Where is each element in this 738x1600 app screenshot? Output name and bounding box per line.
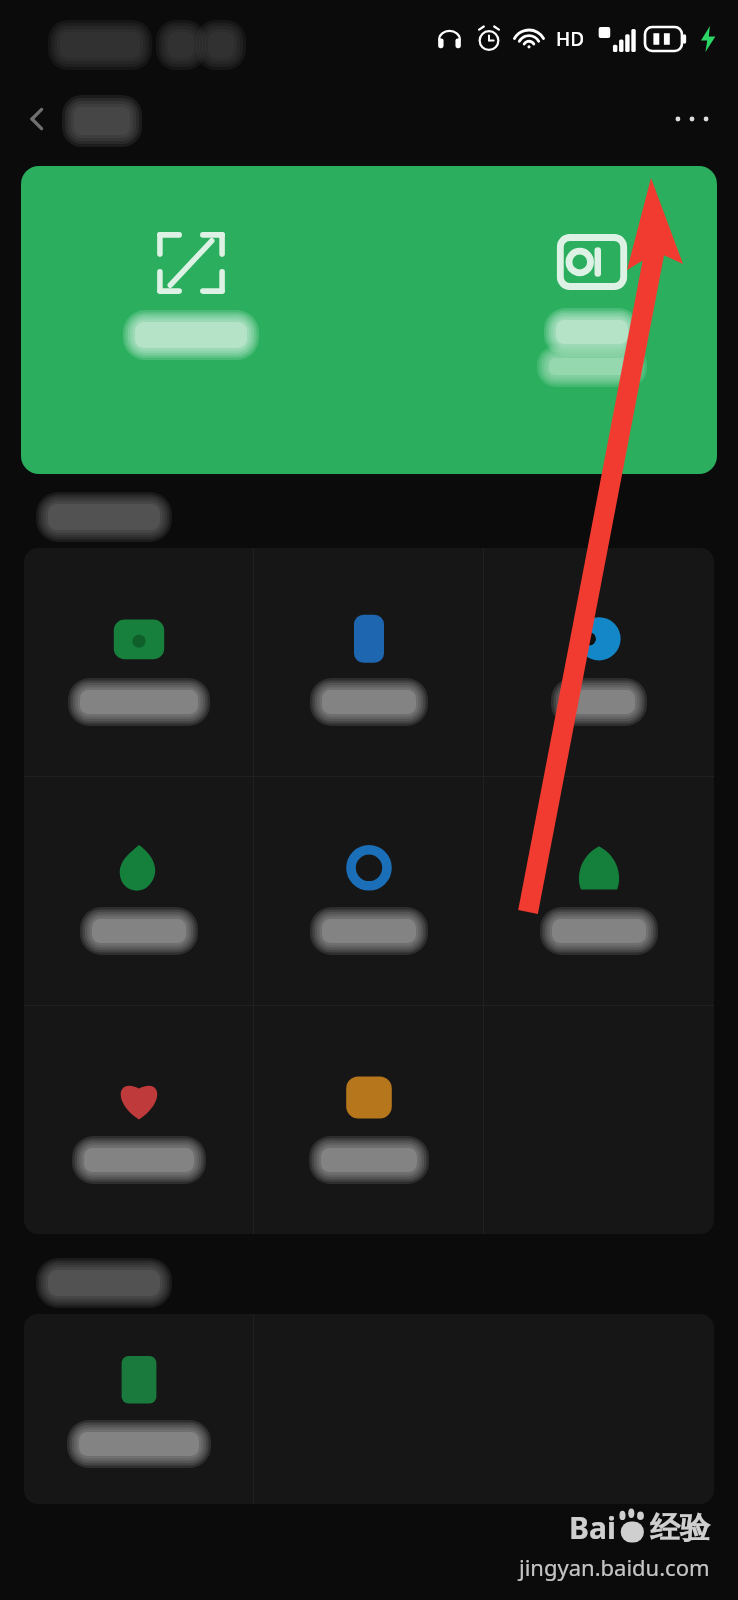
button[interactable] — [21, 166, 717, 474]
staticText: jingyan.baidu.com — [519, 1552, 710, 1582]
button[interactable] — [484, 777, 714, 1005]
button[interactable]: 更多 — [662, 89, 722, 149]
button[interactable] — [254, 777, 484, 1005]
button[interactable]: 返回 — [10, 91, 66, 147]
button[interactable] — [24, 777, 254, 1005]
button[interactable] — [254, 548, 484, 776]
button[interactable] — [24, 1006, 254, 1234]
button[interactable] — [24, 548, 254, 776]
button[interactable] — [24, 1314, 254, 1504]
button[interactable] — [254, 1006, 484, 1234]
staticText: 经验 — [650, 1509, 710, 1547]
button[interactable] — [484, 548, 714, 776]
staticText: HD — [556, 26, 585, 52]
staticText: Bai — [569, 1507, 616, 1548]
